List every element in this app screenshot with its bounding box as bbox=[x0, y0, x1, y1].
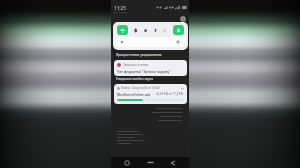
staticText: Приоритетные уведомления bbox=[116, 53, 162, 57]
staticText: 11:25 bbox=[114, 5, 126, 11]
staticText: чт, 7 сент bbox=[114, 11, 128, 15]
staticText: Уведомления без звука bbox=[116, 77, 154, 81]
button[interactable]: Записки к чтению bbox=[114, 60, 187, 76]
button[interactable]: Quick setting 0 bbox=[117, 25, 128, 35]
staticText: 43,64 МБ из 71,8 МБ bbox=[156, 92, 184, 96]
button[interactable]: Quick setting 3 bbox=[150, 25, 161, 35]
button[interactable]: Home bbox=[143, 157, 157, 168]
staticText: Записки к чтению bbox=[123, 63, 149, 67]
button[interactable]: Quick setting 5 bbox=[173, 25, 184, 35]
button[interactable]: Brightness bbox=[115, 37, 186, 47]
staticText: MiuiHomeOnline.apk bbox=[117, 92, 151, 96]
staticText: Файлы · Загрузка 83 из 100мб bbox=[121, 86, 160, 90]
staticText: Чат флудилки "Записи наружу" bbox=[117, 69, 171, 74]
button[interactable]: Recents bbox=[120, 157, 134, 168]
button[interactable]: Settings bbox=[180, 16, 186, 22]
button[interactable]: Файлы · Загрузка 83 из 100мб bbox=[114, 84, 187, 104]
button[interactable]: Quick setting 2 bbox=[140, 25, 151, 35]
button[interactable]: Back bbox=[166, 157, 180, 168]
button[interactable]: Quick setting 1 bbox=[130, 25, 141, 35]
button[interactable]: Quick setting 4 bbox=[159, 25, 170, 35]
